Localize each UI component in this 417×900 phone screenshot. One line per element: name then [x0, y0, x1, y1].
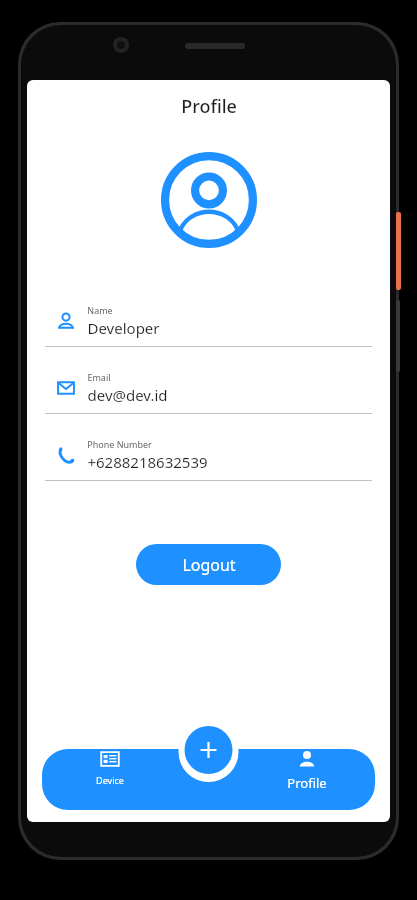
button[interactable]: Device [42, 749, 178, 786]
button[interactable]: Name [45, 296, 372, 346]
staticText: Name [87, 304, 113, 316]
staticText: Email [87, 371, 111, 383]
button[interactable]: Phone Number [45, 430, 372, 480]
staticText: Phone Number [87, 438, 152, 450]
staticText: Profile [287, 774, 327, 792]
staticText: Logout [182, 554, 236, 576]
staticText: Device [96, 774, 124, 786]
button[interactable]: Logout [136, 544, 281, 585]
staticText: dev@dev.id [87, 385, 168, 405]
staticText: Profile [181, 94, 237, 119]
button[interactable]: Email [45, 363, 372, 413]
button[interactable]: Add [184, 722, 234, 772]
staticText: +6288218632539 [87, 452, 208, 472]
staticText: Developer [87, 318, 160, 338]
button[interactable]: Profile [238, 749, 375, 792]
